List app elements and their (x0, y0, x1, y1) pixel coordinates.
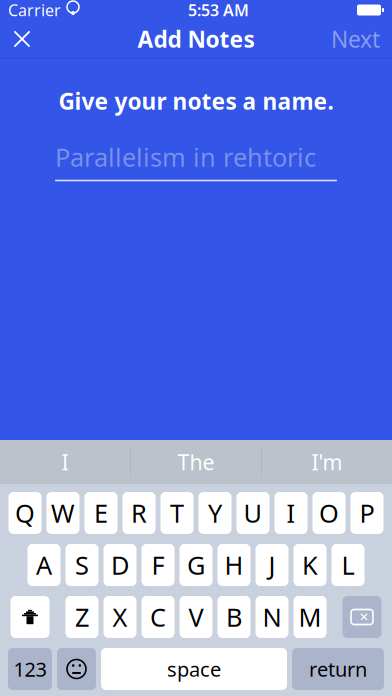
staticText: return (309, 656, 367, 682)
staticText: G (187, 548, 205, 582)
button[interactable]: I (274, 492, 307, 534)
staticText: I (61, 448, 68, 476)
staticText: D (111, 548, 129, 582)
staticText: F (151, 548, 164, 582)
staticText: J (268, 548, 275, 582)
staticText: X (112, 600, 127, 634)
button[interactable]: G (179, 544, 212, 586)
button[interactable]: return (292, 648, 384, 690)
button[interactable]: Emoji (57, 648, 96, 690)
staticText: Parallelism in rehtoric (55, 140, 316, 174)
staticText: U (243, 496, 262, 530)
button[interactable]: N (255, 596, 288, 638)
button[interactable]: Q (8, 492, 41, 534)
staticText: I (286, 496, 295, 530)
button[interactable]: S (65, 544, 98, 586)
button[interactable]: A (27, 544, 60, 586)
button[interactable]: Close (0, 20, 44, 58)
staticText: Q (15, 496, 35, 530)
staticText: 5:53 AM (188, 0, 249, 21)
staticText: A (36, 548, 52, 582)
button[interactable]: V (179, 596, 212, 638)
staticText: Give your notes a name. (58, 86, 333, 116)
staticText: T (170, 496, 184, 530)
button[interactable]: D (103, 544, 136, 586)
staticText: Y (208, 496, 222, 530)
staticText: 123 (13, 656, 46, 682)
staticText: V (188, 600, 203, 634)
button[interactable]: Z (65, 596, 98, 638)
staticText: space (167, 656, 221, 682)
staticText: ✕ (359, 610, 369, 624)
staticText: L (341, 548, 354, 582)
button[interactable]: K (293, 544, 326, 586)
staticText: O (319, 496, 339, 530)
staticText: M (298, 600, 321, 634)
button[interactable]: J (255, 544, 288, 586)
button[interactable]: 123 (8, 648, 52, 690)
button[interactable]: I (0, 440, 130, 484)
staticText: R (131, 496, 147, 530)
button[interactable]: The (131, 440, 261, 484)
staticText: K (302, 548, 318, 582)
button[interactable]: B (217, 596, 250, 638)
button[interactable]: Y (198, 492, 231, 534)
button[interactable]: Next (319, 20, 392, 58)
button[interactable]: F (141, 544, 174, 586)
staticText: B (226, 600, 242, 634)
button[interactable]: I'm (262, 440, 392, 484)
button[interactable]: H (217, 544, 250, 586)
staticText: E (94, 496, 108, 530)
button[interactable]: P (350, 492, 383, 534)
staticText: P (359, 496, 374, 530)
button[interactable]: W (46, 492, 79, 534)
button[interactable]: L (331, 544, 364, 586)
button[interactable]: O (312, 492, 345, 534)
button[interactable]: Shift (10, 596, 49, 638)
staticText: S (75, 548, 89, 582)
staticText: W (51, 496, 75, 530)
button[interactable]: U (236, 492, 269, 534)
button[interactable]: Delete (342, 596, 381, 638)
staticText: Add Notes (137, 24, 254, 54)
button[interactable]: R (122, 492, 155, 534)
staticText: C (150, 600, 166, 634)
button[interactable]: C (141, 596, 174, 638)
staticText: Next (331, 24, 380, 54)
button[interactable]: T (160, 492, 193, 534)
staticText: Z (75, 600, 89, 634)
button[interactable]: space (101, 648, 287, 690)
button[interactable]: X (103, 596, 136, 638)
staticText: H (224, 548, 243, 582)
button[interactable]: M (293, 596, 326, 638)
button[interactable]: E (84, 492, 117, 534)
staticText: I'm (311, 448, 342, 476)
staticText: N (262, 600, 281, 634)
staticText: The (177, 448, 214, 476)
staticText: Carrier (8, 0, 61, 21)
